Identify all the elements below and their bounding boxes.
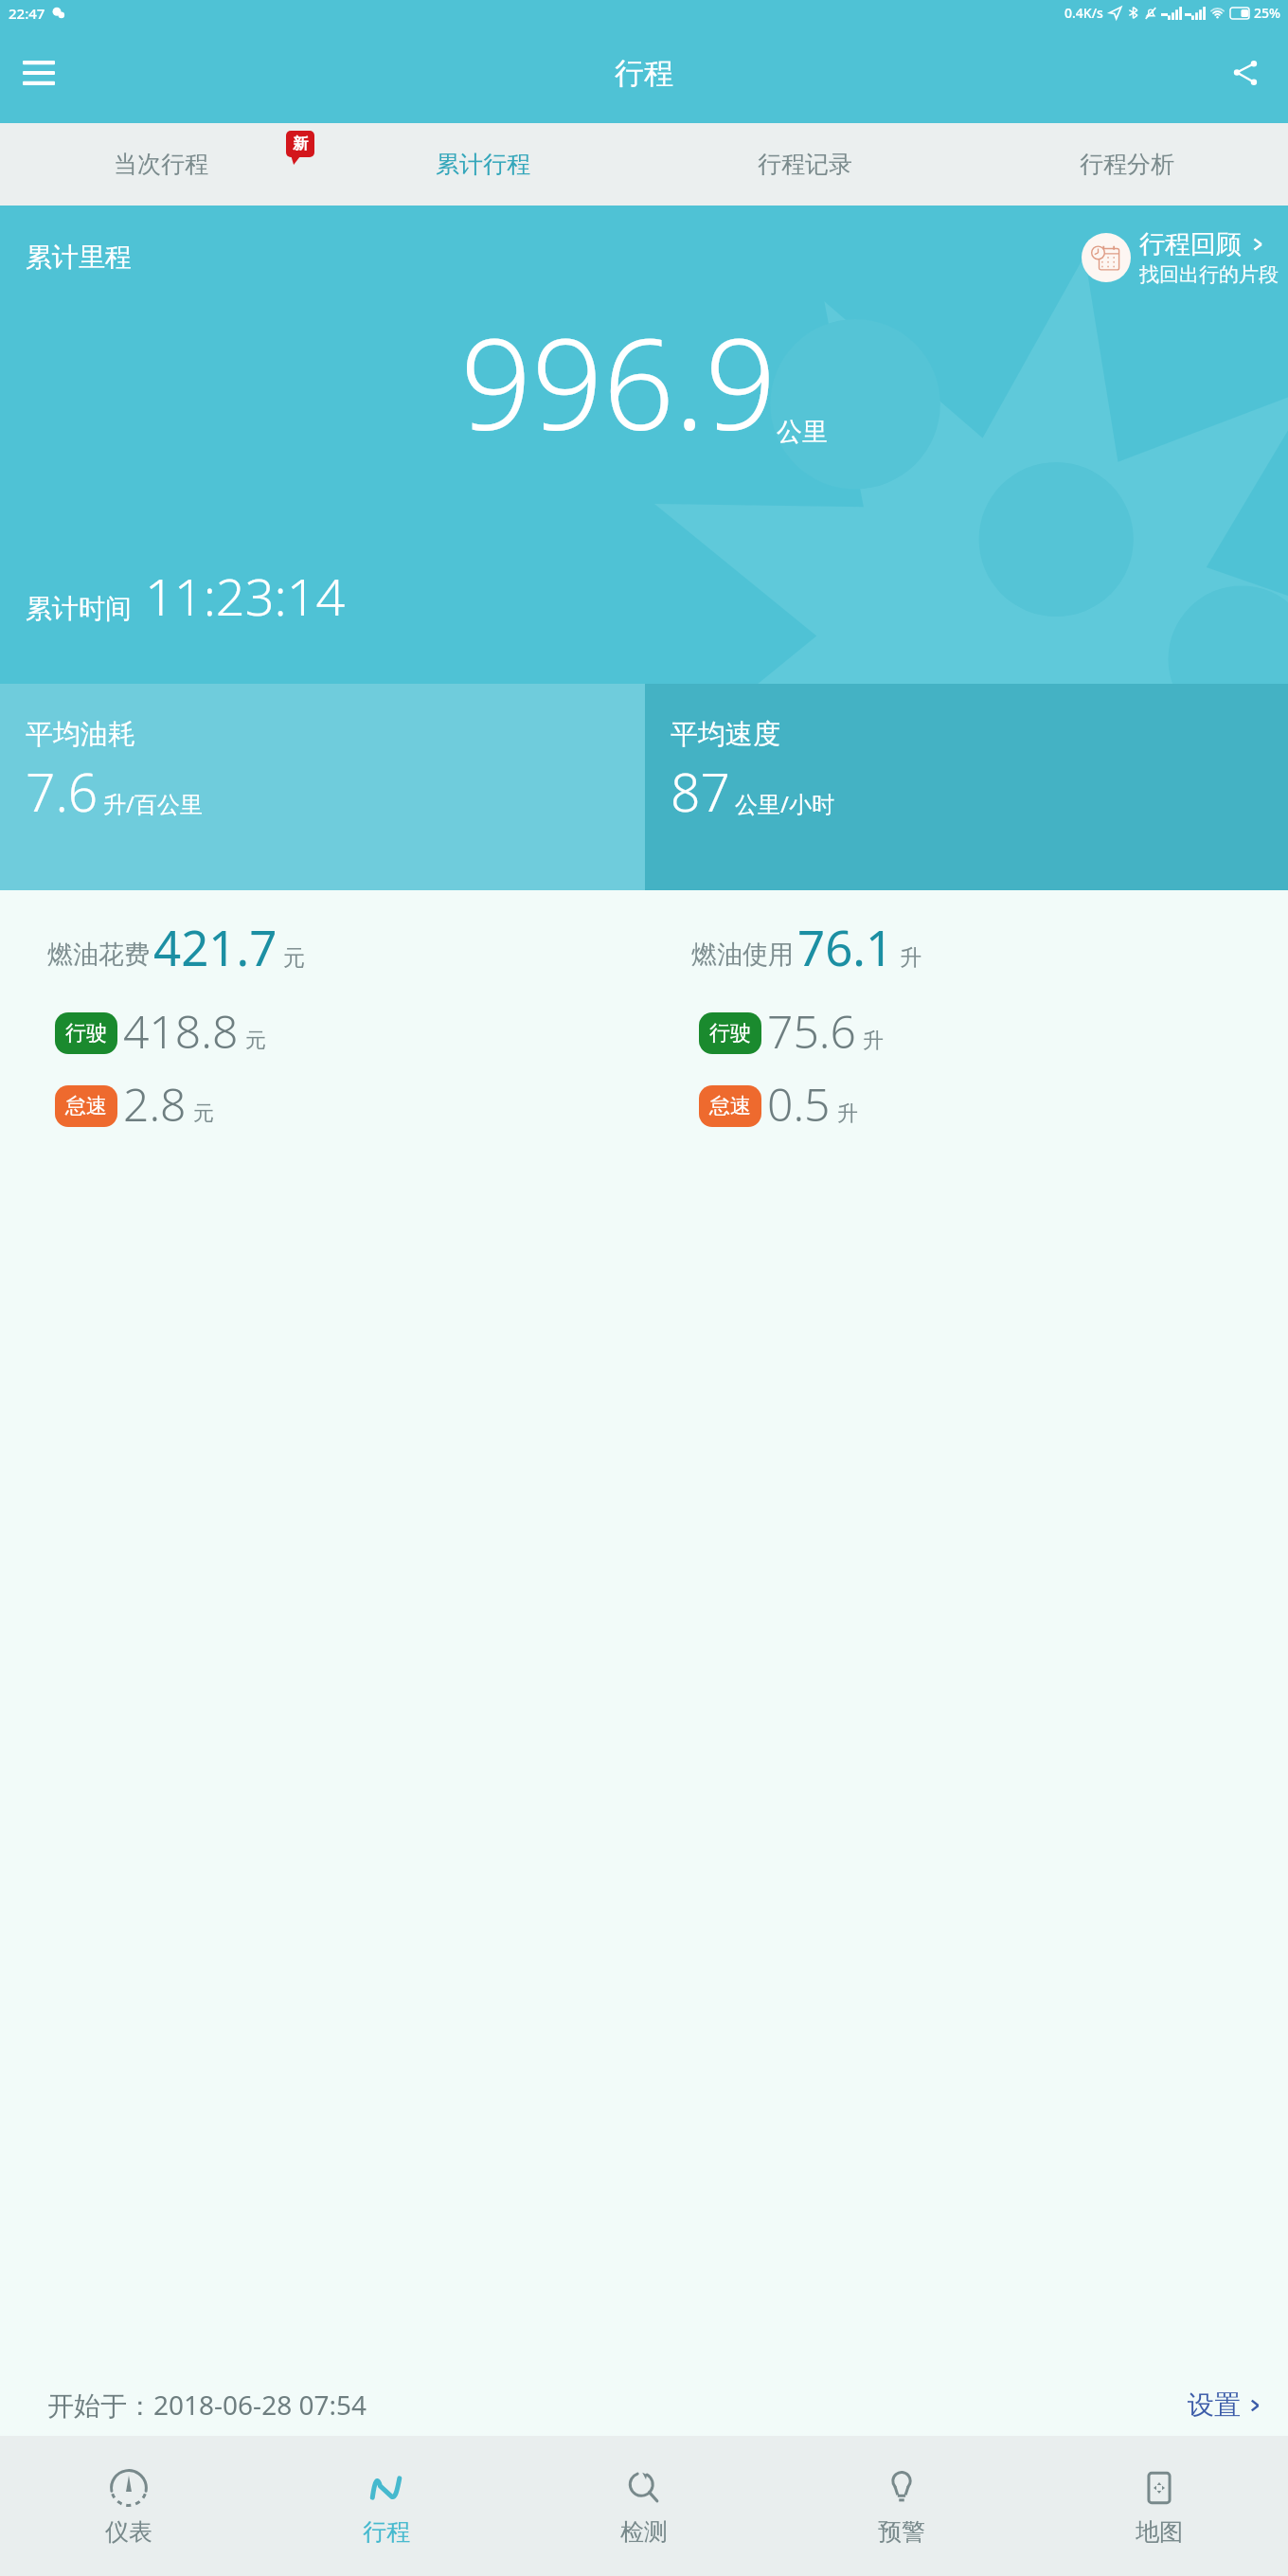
button[interactable]: 行程记录 bbox=[644, 123, 966, 206]
staticText: 行程分析 bbox=[1080, 150, 1174, 179]
staticText: 仪表 bbox=[105, 2517, 152, 2547]
staticText: 行程记录 bbox=[758, 150, 852, 179]
staticText: 升 bbox=[900, 944, 921, 972]
staticText: 怠速 bbox=[709, 1093, 751, 1119]
staticText: 地图 bbox=[1136, 2517, 1183, 2547]
button[interactable]: 行程 bbox=[258, 2436, 515, 2576]
staticText: 行程 bbox=[363, 2517, 410, 2547]
staticText: 行程 bbox=[615, 55, 673, 92]
button[interactable]: 仪表 bbox=[0, 2436, 258, 2576]
button[interactable]: 行程分析 bbox=[966, 123, 1288, 206]
staticText: 预警 bbox=[878, 2517, 925, 2547]
button[interactable]: 行驶 bbox=[699, 1000, 1288, 1062]
staticText: 11:23:14 bbox=[145, 561, 346, 631]
staticText: 公里/小时 bbox=[735, 788, 834, 819]
staticText: 22:47 bbox=[9, 4, 45, 23]
staticText: 燃油花费 bbox=[47, 939, 150, 971]
button[interactable]: 平均油耗 bbox=[0, 684, 645, 890]
staticText: 开始于：2018-06-28 07:54 bbox=[47, 2387, 367, 2423]
button[interactable]: 怠速 bbox=[55, 1073, 644, 1135]
staticText: 新 bbox=[293, 134, 308, 153]
staticText: 累计行程 bbox=[436, 150, 530, 179]
staticText: 行程回顾 bbox=[1139, 228, 1242, 260]
staticText: 累计时间 bbox=[26, 592, 132, 625]
staticText: 25% bbox=[1254, 4, 1280, 22]
staticText: 燃油使用 bbox=[691, 939, 794, 971]
staticText: 公里 bbox=[777, 416, 828, 448]
button[interactable]: 设置 bbox=[1188, 2388, 1263, 2422]
staticText: 996.9 bbox=[460, 296, 777, 467]
button[interactable]: Menu bbox=[9, 44, 68, 102]
button[interactable]: 怠速 bbox=[699, 1073, 1288, 1135]
staticText: 元 bbox=[193, 1100, 214, 1127]
button[interactable]: 检测 bbox=[515, 2436, 773, 2576]
button[interactable]: Share bbox=[1216, 44, 1275, 102]
staticText: 0.4K/s bbox=[1064, 4, 1103, 22]
staticText: 87 bbox=[671, 756, 730, 827]
button[interactable]: 当次行程 bbox=[0, 123, 322, 206]
staticText: 升 bbox=[837, 1100, 858, 1127]
staticText: 累计里程 bbox=[26, 241, 132, 274]
staticText: 设置 bbox=[1188, 2388, 1241, 2422]
staticText: 76.1 bbox=[797, 914, 894, 979]
staticText: 行驶 bbox=[65, 1020, 107, 1046]
button[interactable]: 行驶 bbox=[55, 1000, 644, 1062]
button[interactable]: 累计行程 bbox=[322, 123, 644, 206]
staticText: 75.6 bbox=[767, 1000, 856, 1062]
staticText: 421.7 bbox=[153, 914, 277, 979]
button[interactable]: 平均速度 bbox=[645, 684, 1288, 890]
button[interactable]: 预警 bbox=[773, 2436, 1030, 2576]
staticText: 升/百公里 bbox=[103, 788, 203, 819]
staticText: 2.8 bbox=[123, 1073, 187, 1135]
staticText: 元 bbox=[283, 944, 305, 972]
staticText: 找回出行的片段 bbox=[1139, 262, 1279, 287]
staticText: 检测 bbox=[620, 2517, 668, 2547]
button[interactable]: 行程回顾 bbox=[1082, 228, 1279, 287]
staticText: 升 bbox=[863, 1028, 884, 1054]
staticText: 行驶 bbox=[709, 1020, 751, 1046]
staticText: 怠速 bbox=[65, 1093, 107, 1119]
button[interactable]: 燃油花费 bbox=[47, 914, 644, 979]
staticText: 平均油耗 bbox=[26, 717, 135, 752]
staticText: 当次行程 bbox=[114, 150, 208, 179]
staticText: 平均速度 bbox=[671, 717, 780, 752]
staticText: 元 bbox=[245, 1028, 266, 1054]
button[interactable]: 地图 bbox=[1030, 2436, 1288, 2576]
button[interactable]: 燃油使用 bbox=[691, 914, 1288, 979]
staticText: 7.6 bbox=[26, 756, 98, 827]
staticText: 0.5 bbox=[767, 1073, 831, 1135]
staticText: 418.8 bbox=[123, 1000, 239, 1062]
